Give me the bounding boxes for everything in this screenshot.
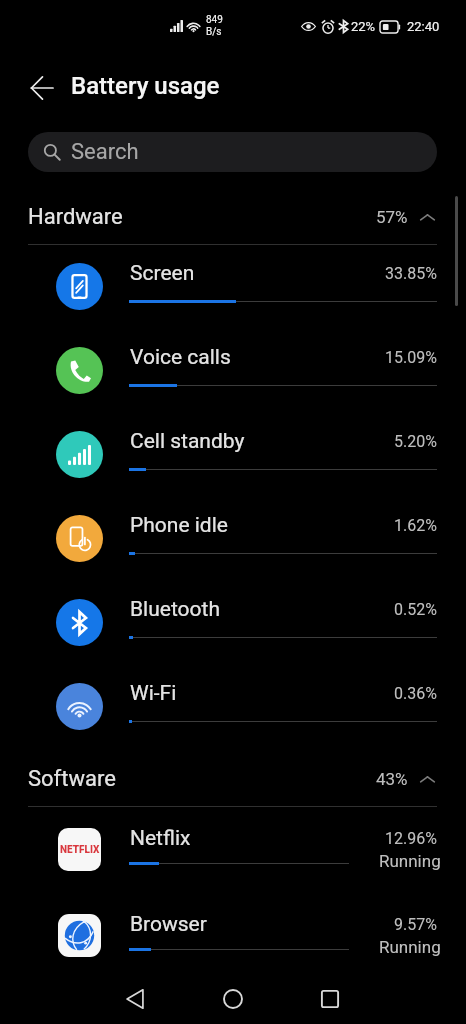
button[interactable]: NETFLIX: [0, 806, 466, 892]
staticText: 22%: [351, 19, 376, 34]
button[interactable]: Browser: [0, 892, 466, 978]
staticText: Phone idle: [130, 513, 228, 538]
staticText: Netflix: [130, 826, 191, 851]
staticText: Browser: [130, 912, 207, 937]
button[interactable]: Search: [28, 132, 437, 172]
staticText: Cell standby: [130, 429, 245, 454]
staticText: 0.36%: [394, 684, 437, 703]
staticText: 57%: [376, 207, 408, 227]
staticText: Battery usage: [71, 72, 220, 100]
staticText: Wi-Fi: [130, 681, 177, 706]
staticText: B/s: [206, 26, 222, 38]
staticText: Bluetooth: [130, 597, 220, 622]
staticText: Running: [379, 851, 441, 871]
button[interactable]: Bluetooth: [0, 580, 466, 664]
button[interactable]: Software: [0, 750, 466, 807]
staticText: Software: [28, 766, 116, 792]
staticText: 22:40: [407, 19, 440, 34]
staticText: 849: [206, 14, 223, 26]
button[interactable]: Cell standby: [0, 412, 466, 496]
staticText: 15.09%: [385, 348, 437, 367]
button[interactable]: Wi-Fi: [0, 664, 466, 748]
staticText: 0.52%: [394, 600, 437, 619]
button[interactable]: Hardware: [0, 188, 466, 245]
staticText: 9.57%: [394, 915, 437, 934]
staticText: 33.85%: [385, 264, 437, 283]
staticText: 1.62%: [394, 516, 437, 535]
button[interactable]: Back: [107, 972, 163, 1024]
button[interactable]: Back: [20, 66, 64, 110]
staticText: Voice calls: [130, 345, 231, 370]
staticText: 43%: [376, 769, 408, 789]
button[interactable]: Voice calls: [0, 328, 466, 412]
button[interactable]: Recents: [302, 972, 358, 1024]
staticText: Hardware: [28, 204, 123, 230]
staticText: Running: [379, 937, 441, 957]
staticText: NETFLIX: [60, 844, 100, 856]
staticText: Search: [71, 139, 139, 165]
button[interactable]: Phone idle: [0, 496, 466, 580]
button[interactable]: Home: [205, 972, 261, 1024]
staticText: 12.96%: [385, 829, 437, 848]
staticText: Screen: [130, 261, 195, 286]
staticText: 5.20%: [394, 432, 437, 451]
button[interactable]: Screen: [0, 244, 466, 328]
